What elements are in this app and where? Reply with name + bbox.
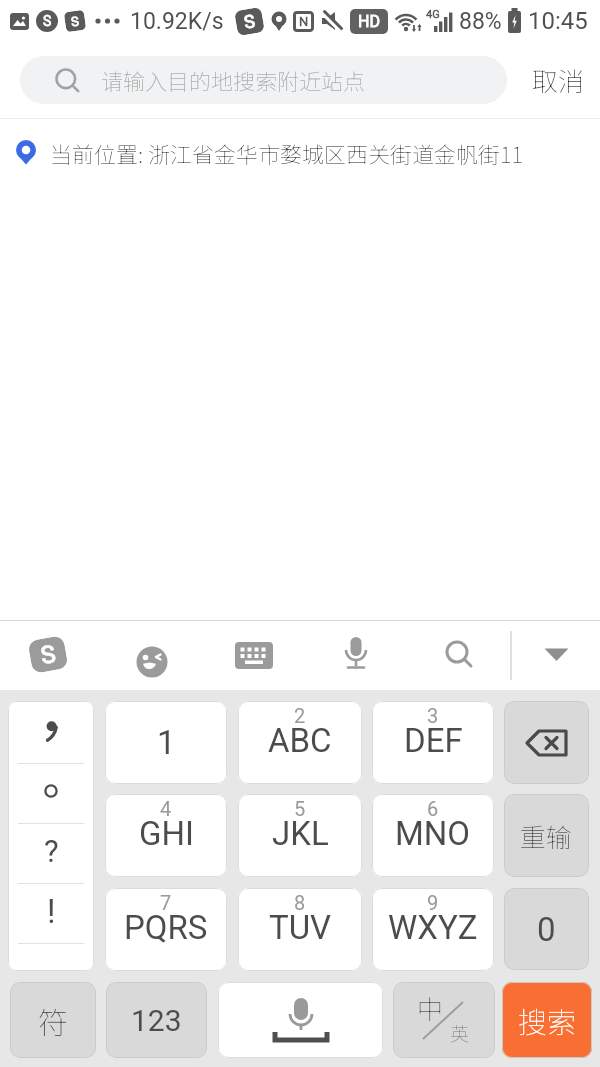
staticText: 请输入目的地搜索附近站点: [101, 64, 366, 96]
staticText: 4: [160, 797, 172, 820]
button[interactable]: 2: [238, 701, 362, 784]
staticText: 重输: [520, 817, 573, 855]
button[interactable]: 1: [105, 701, 227, 784]
button[interactable]: 9: [372, 888, 494, 971]
button[interactable]: ?: [8, 821, 94, 881]
staticText: ?: [44, 833, 59, 869]
button[interactable]: 重输: [504, 794, 589, 877]
button[interactable]: 当前位置: 浙江省金华市婺城区西关街道金帆街11: [0, 119, 600, 187]
staticText: 0: [537, 910, 556, 949]
button[interactable]: [218, 982, 383, 1058]
button[interactable]: 中: [393, 982, 495, 1058]
button[interactable]: [444, 639, 474, 669]
staticText: 7: [160, 891, 172, 914]
staticText: 88%: [459, 8, 502, 35]
staticText: JKL: [272, 814, 329, 853]
staticText: 搜索: [518, 999, 577, 1041]
staticText: GHI: [139, 814, 194, 853]
staticText: ABC: [268, 721, 332, 760]
staticText: 9: [427, 891, 439, 914]
staticText: HD: [358, 12, 380, 31]
button[interactable]: [8, 701, 94, 761]
button[interactable]: !: [8, 881, 94, 941]
staticText: 8: [294, 891, 306, 914]
staticText: S: [242, 10, 257, 33]
staticText: DEF: [404, 721, 463, 760]
button[interactable]: [343, 636, 369, 674]
staticText: 10.92K/s: [130, 8, 224, 35]
staticText: WXYZ: [388, 908, 478, 947]
staticText: PQRS: [124, 908, 208, 947]
button[interactable]: [8, 761, 94, 821]
button[interactable]: [8, 701, 94, 971]
button[interactable]: 0: [504, 888, 589, 970]
button[interactable]: 请输入目的地搜索附近站点: [20, 56, 507, 104]
button[interactable]: 取消: [532, 61, 585, 99]
button[interactable]: S: [27, 635, 69, 674]
button[interactable]: 3: [372, 701, 494, 784]
staticText: TUV: [269, 908, 332, 947]
staticText: N: [299, 14, 309, 29]
button[interactable]: 搜索: [502, 982, 592, 1058]
button[interactable]: 7: [105, 888, 227, 971]
staticText: 1: [157, 723, 176, 762]
staticText: 当前位置: 浙江省金华市婺城区西关街道金帆街11: [50, 137, 523, 169]
button[interactable]: 8: [238, 888, 362, 971]
staticText: 符: [38, 999, 68, 1042]
button[interactable]: 6: [372, 794, 494, 877]
button[interactable]: [504, 701, 589, 784]
staticText: 5: [294, 797, 306, 820]
staticText: S: [39, 640, 58, 670]
button[interactable]: [136, 646, 168, 678]
button[interactable]: 符: [10, 982, 96, 1058]
staticText: 2: [294, 704, 306, 727]
staticText: 123: [131, 1003, 182, 1038]
staticText: 6: [427, 797, 439, 820]
staticText: 4G: [426, 8, 440, 21]
button[interactable]: 5: [238, 794, 362, 877]
button[interactable]: [543, 647, 570, 664]
button[interactable]: 4: [105, 794, 227, 877]
button[interactable]: [235, 642, 273, 669]
staticText: MNO: [395, 814, 471, 853]
staticText: S: [43, 13, 52, 29]
staticText: !: [47, 892, 56, 931]
staticText: 取消: [532, 61, 585, 99]
staticText: S: [70, 13, 80, 29]
staticText: 10:45: [528, 7, 588, 35]
staticText: 中: [417, 989, 444, 1027]
button[interactable]: 123: [106, 982, 207, 1058]
staticText: 3: [427, 704, 439, 727]
staticText: 英: [450, 1019, 470, 1047]
